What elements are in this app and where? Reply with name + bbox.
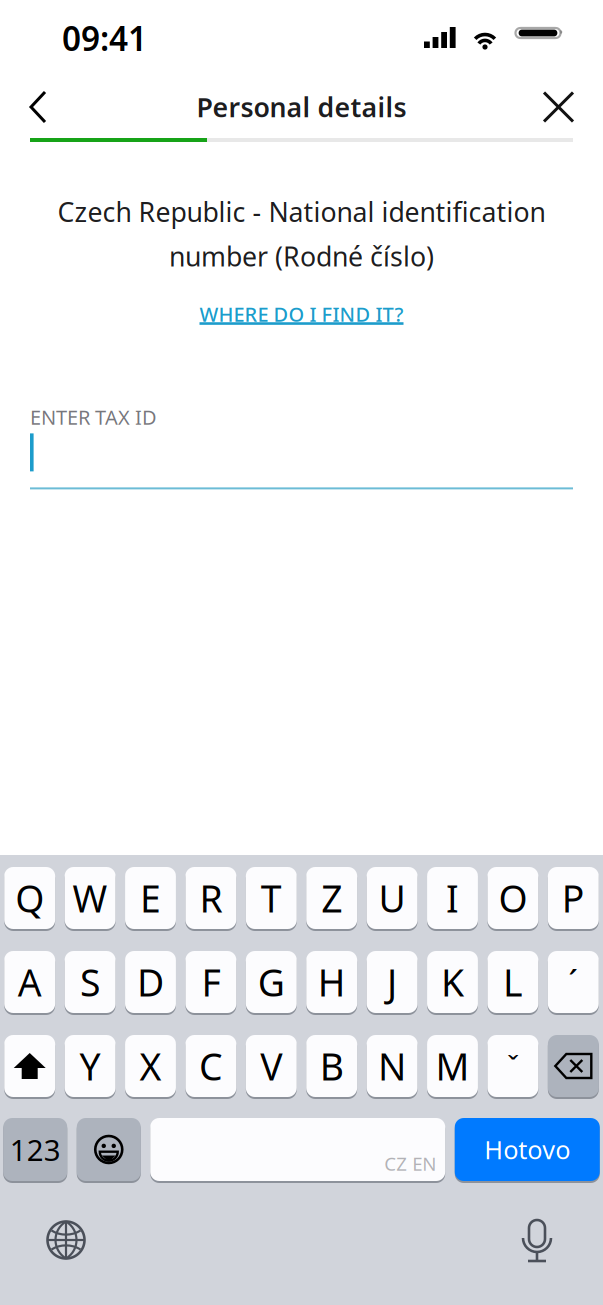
staticText: Hotovo (484, 1133, 570, 1166)
staticText: A (18, 957, 42, 1007)
button[interactable]: J (367, 950, 418, 1014)
button[interactable]: C (185, 1034, 236, 1098)
staticText: K (441, 957, 464, 1007)
button[interactable]: K (427, 950, 478, 1014)
button[interactable]: B (306, 1034, 357, 1098)
button[interactable]: Space (150, 1117, 445, 1182)
button[interactable]: Y (65, 1034, 116, 1098)
staticText: C (199, 1041, 223, 1091)
button[interactable]: P (548, 866, 599, 930)
button[interactable]: A (4, 950, 55, 1014)
button[interactable]: Z (306, 866, 357, 930)
button[interactable]: H (306, 950, 357, 1014)
button[interactable]: ´ (548, 950, 599, 1014)
staticText: T (261, 873, 282, 923)
button[interactable]: Next keyboard (0, 1220, 100, 1260)
staticText: O (498, 873, 527, 923)
button[interactable]: Delete (548, 1034, 599, 1098)
button[interactable]: I (427, 866, 478, 930)
staticText: H (318, 957, 346, 1007)
staticText: 123 (10, 1130, 61, 1169)
staticText: number (Rodné číslo) (169, 238, 434, 274)
button[interactable]: L (487, 950, 538, 1014)
button[interactable]: S (65, 950, 116, 1014)
button[interactable]: V (246, 1034, 297, 1098)
staticText: F (201, 957, 220, 1007)
button[interactable]: Dictation (506, 1217, 603, 1263)
button[interactable]: T (246, 866, 297, 930)
staticText: N (378, 1041, 406, 1091)
staticText: P (562, 873, 585, 923)
button[interactable]: G (246, 950, 297, 1014)
button[interactable]: W (65, 866, 116, 930)
staticText: ´ (568, 959, 578, 1005)
button[interactable]: ˇ (487, 1034, 538, 1098)
staticText: Czech Republic - National identification (57, 194, 545, 229)
button[interactable]: WHERE DO I FIND IT? (190, 297, 412, 329)
button[interactable]: M (427, 1034, 478, 1098)
staticText: U (379, 873, 406, 923)
button[interactable]: Q (4, 866, 55, 930)
staticText: B (320, 1041, 344, 1091)
staticText: I (446, 873, 459, 923)
staticText: L (503, 957, 523, 1007)
staticText: R (199, 873, 222, 923)
button[interactable]: D (125, 950, 176, 1014)
button[interactable]: Hotovo (455, 1117, 600, 1182)
button[interactable]: O (487, 866, 538, 930)
staticText: Personal details (196, 89, 406, 125)
staticText: J (387, 957, 397, 1007)
staticText: WHERE DO I FIND IT? (199, 301, 403, 327)
staticText: CZ EN (384, 1151, 436, 1176)
staticText: ENTER TAX ID (30, 404, 157, 430)
staticText: 09:41 (62, 16, 147, 60)
staticText: Q (15, 873, 44, 923)
staticText: G (258, 957, 285, 1007)
button[interactable]: Emoji (77, 1117, 141, 1182)
staticText: V (260, 1041, 282, 1091)
button[interactable]: Shift (4, 1034, 55, 1098)
staticText: D (137, 957, 164, 1007)
staticText: W (73, 873, 108, 923)
button[interactable]: X (125, 1034, 176, 1098)
staticText: S (80, 957, 100, 1007)
staticText: M (435, 1041, 469, 1091)
staticText: ˇ (507, 1046, 519, 1085)
button[interactable]: Close (522, 76, 603, 138)
staticText: Y (80, 1041, 101, 1091)
button[interactable]: F (185, 950, 236, 1014)
button[interactable]: E (125, 866, 176, 930)
button[interactable]: U (367, 866, 418, 930)
button[interactable]: Back (0, 76, 72, 138)
staticText: X (139, 1041, 161, 1091)
button[interactable]: 123 (3, 1117, 67, 1182)
button[interactable]: N (367, 1034, 418, 1098)
staticText: E (140, 873, 161, 923)
button[interactable]: R (185, 866, 236, 930)
staticText: Z (321, 873, 342, 923)
